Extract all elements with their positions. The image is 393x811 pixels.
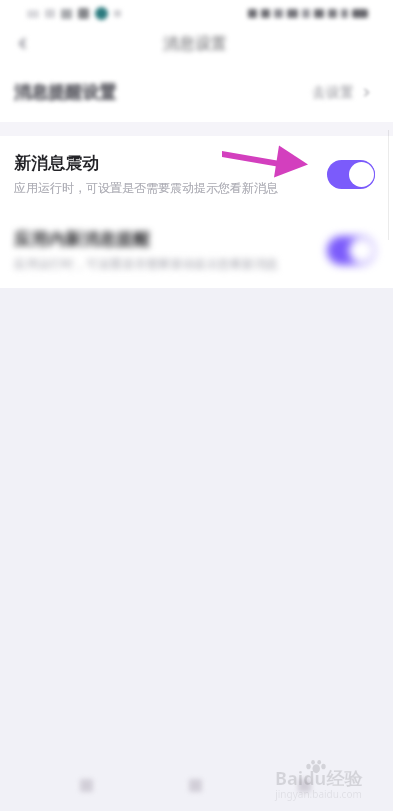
button[interactable]: Recents: [64, 763, 108, 807]
staticText: 应用运行时，可设置是否需要震动提示您看新消息: [14, 256, 278, 271]
button[interactable]: Toggle new message vibration: [327, 160, 375, 189]
staticText: 应用内新消息提醒: [14, 229, 150, 250]
button[interactable]: Toggle new message vibration: [327, 236, 375, 265]
button[interactable]: Home: [173, 763, 217, 807]
staticText: 消息提醒设置: [14, 82, 116, 103]
staticText: 消息设置: [163, 34, 227, 54]
button[interactable]: Back: [282, 763, 326, 807]
staticText: jingyan.baidu.com: [275, 787, 362, 801]
staticText: 应用运行时，可设置是否需要震动提示您看新消息: [14, 180, 278, 195]
staticText: 去设置: [312, 84, 354, 102]
button[interactable]: 消息提醒设置: [0, 82, 393, 103]
staticText: Baidu经验: [275, 766, 363, 791]
staticText: 新消息震动: [14, 153, 99, 174]
button[interactable]: Back: [8, 29, 36, 57]
button[interactable]: 新消息震动: [0, 136, 393, 212]
button[interactable]: 应用内新消息提醒: [0, 212, 393, 288]
